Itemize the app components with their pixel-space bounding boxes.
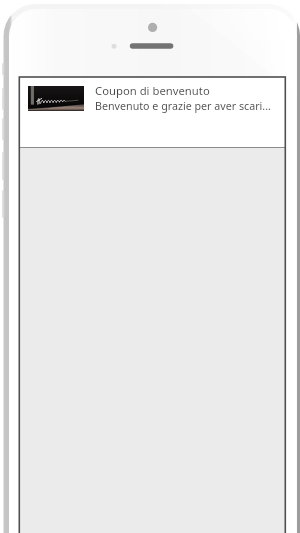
staticText: Benvenuto e grazie per aver scari...	[95, 99, 271, 114]
staticText: Coupon di benvenuto	[95, 83, 210, 98]
button[interactable]: Coupon di benvenuto	[19, 77, 286, 147]
